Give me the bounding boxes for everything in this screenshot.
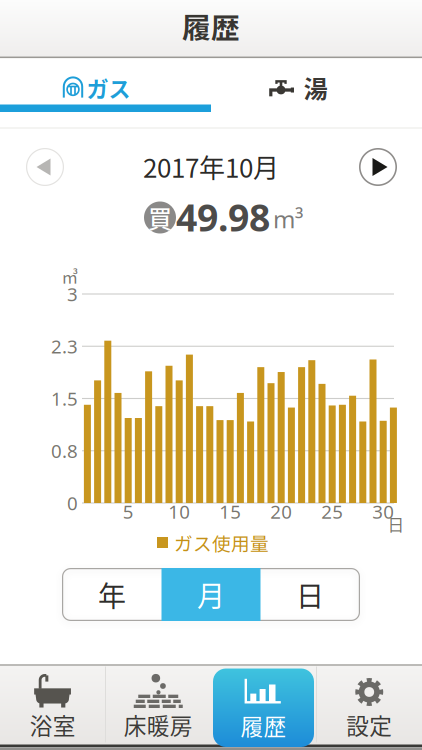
button[interactable]: 床暖房 [105, 667, 211, 745]
button[interactable]: 日 [260, 568, 359, 621]
staticText: 買 [148, 200, 172, 235]
staticText: ガス使用量 [174, 529, 269, 556]
staticText: 25 [321, 499, 343, 524]
staticText: 履歴 [240, 709, 286, 742]
staticText: 0.8 [51, 438, 78, 463]
staticText: 3 [67, 282, 78, 306]
staticText: 10 [168, 499, 190, 524]
button[interactable]: 年 [62, 568, 161, 621]
button[interactable]: 設定 [316, 667, 422, 745]
staticText: 2.3 [51, 334, 78, 359]
staticText: 浴室 [30, 708, 76, 741]
staticText: ㎥ [61, 264, 78, 288]
button[interactable]: 月 [161, 568, 260, 621]
staticText: 15 [219, 499, 241, 524]
staticText: 設定 [346, 708, 392, 741]
button[interactable]: 翌月 [359, 148, 397, 186]
staticText: 床暖房 [124, 708, 193, 741]
button[interactable]: 浴室 [0, 667, 105, 745]
staticText: 履歴 [182, 5, 240, 47]
staticText: 0 [67, 491, 78, 515]
staticText: 5 [123, 499, 134, 524]
staticText: 2017年10月 [143, 148, 279, 185]
staticText: 49.98 [176, 192, 270, 242]
staticText: 日 [387, 512, 404, 536]
staticText: ガス [86, 72, 130, 103]
staticText: m³ [273, 203, 303, 235]
staticText: 20 [270, 499, 292, 524]
staticText: 日 [296, 574, 324, 615]
button[interactable]: 履歴 [213, 668, 314, 747]
staticText: 1.5 [51, 386, 78, 411]
button[interactable]: 湯 [211, 62, 422, 110]
button[interactable]: ガス [0, 62, 211, 110]
staticText: 30 [372, 499, 394, 524]
staticText: 湯 [304, 70, 328, 105]
staticText: 月 [197, 574, 225, 615]
staticText: 年 [98, 574, 126, 615]
button[interactable]: 前月 [26, 148, 64, 186]
